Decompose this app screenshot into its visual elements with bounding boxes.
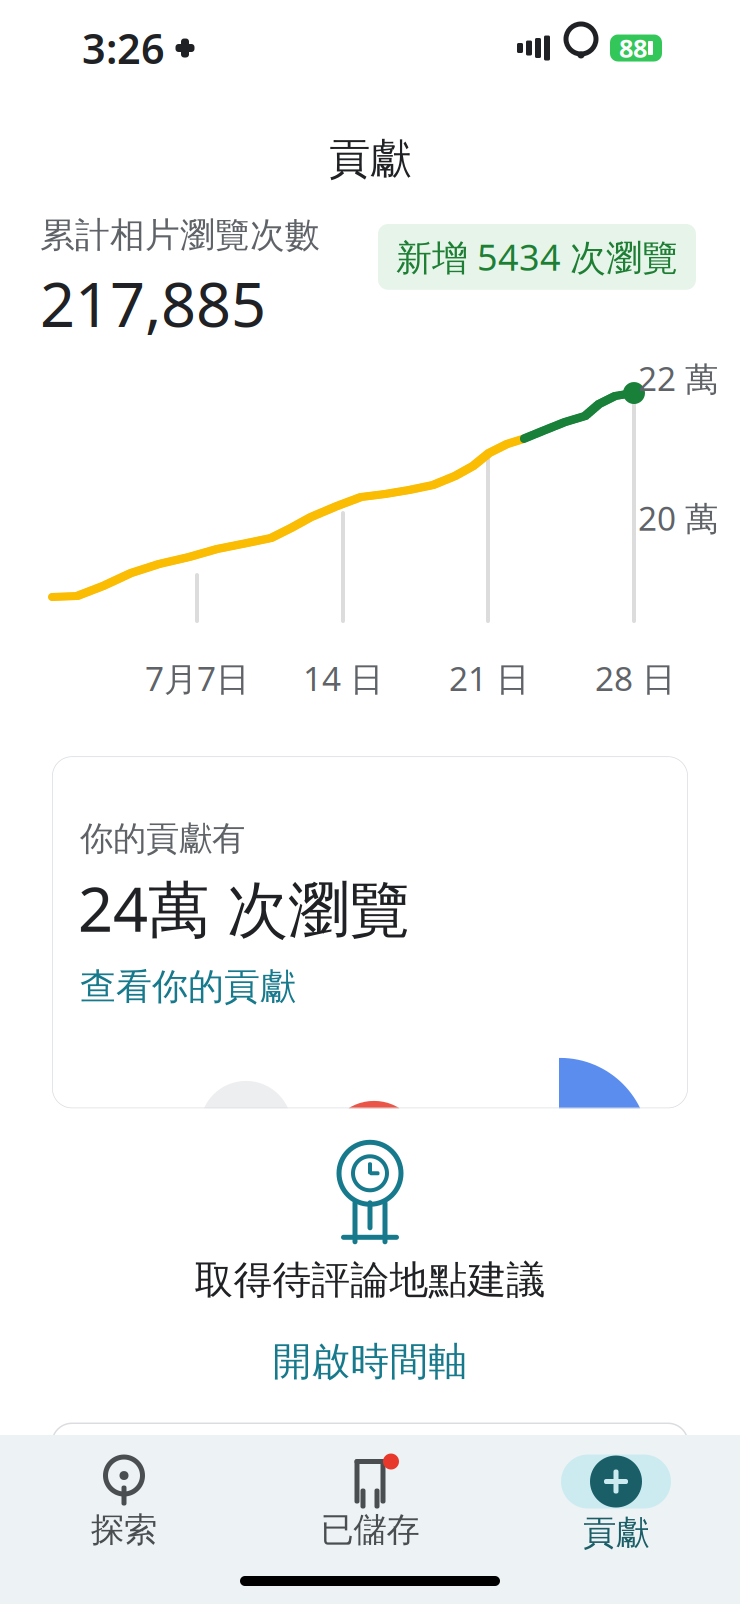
staticText: 88	[619, 31, 647, 65]
button[interactable]: 取得待評論地點建議	[40, 1108, 700, 1304]
button[interactable]: 貢獻	[493, 1449, 739, 1559]
staticText: 14 日	[303, 656, 383, 700]
staticText: 貢獻	[583, 1512, 649, 1553]
staticText: 探索	[91, 1509, 157, 1550]
button[interactable]: 開啟時間軸	[248, 1326, 491, 1397]
button[interactable]: 探索	[1, 1449, 247, 1559]
staticText: 3:26	[82, 21, 165, 75]
staticText: 20 萬	[638, 496, 718, 540]
staticText: 取得待評論地點建議	[194, 1256, 545, 1304]
staticText: 24萬 次瀏覽	[78, 867, 410, 949]
button[interactable]: 你的貢獻有	[52, 756, 688, 1108]
staticText: 貢獻	[329, 134, 411, 184]
staticText: 217,885	[40, 263, 266, 344]
staticText: 查看你的貢獻	[80, 965, 296, 1009]
staticText: 你的貢獻有	[80, 818, 245, 859]
staticText: 7月7日	[145, 656, 249, 700]
staticText: 22 萬	[638, 356, 718, 400]
button[interactable]: 已儲存	[247, 1449, 493, 1559]
staticText: 新增 5434 次瀏覽	[396, 233, 678, 281]
staticText: 已儲存	[320, 1509, 419, 1550]
staticText: 累計相片瀏覽次數	[40, 214, 320, 257]
staticText: 開啟時間軸	[272, 1338, 467, 1385]
staticText: 21 日	[449, 656, 529, 700]
staticText: 28 日	[595, 656, 675, 700]
